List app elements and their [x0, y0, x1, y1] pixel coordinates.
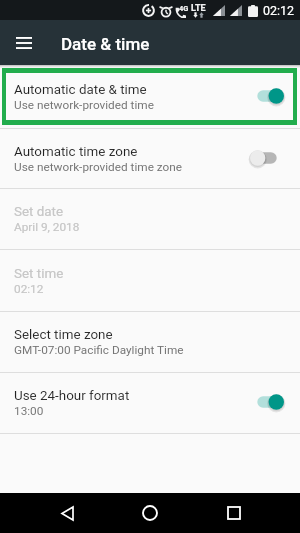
- staticText: LTE: [191, 3, 206, 14]
- staticText: Date & time: [61, 34, 150, 54]
- staticText: 02:12: [14, 282, 44, 296]
- button[interactable]: Automatic date & time: [6, 73, 293, 120]
- button[interactable]: Set date: [0, 189, 300, 249]
- button[interactable]: Toggle off: [250, 148, 284, 168]
- button[interactable]: Recent apps: [210, 493, 258, 533]
- button[interactable]: Automatic time zone: [0, 129, 300, 188]
- staticText: Automatic date & time: [14, 82, 147, 98]
- button[interactable]: Open navigation drawer: [0, 20, 45, 65]
- staticText: April 9, 2018: [14, 220, 80, 234]
- staticText: Select time zone: [14, 327, 113, 343]
- staticText: Automatic time zone: [14, 144, 138, 160]
- button[interactable]: Home: [126, 493, 174, 533]
- button[interactable]: Use 24-hour format: [0, 373, 300, 433]
- staticText: Use network-provided time zone: [14, 160, 183, 174]
- staticText: Set date: [14, 204, 64, 220]
- staticText: Set time: [14, 266, 64, 282]
- staticText: 4G: [179, 4, 189, 13]
- button[interactable]: Select time zone: [0, 312, 300, 372]
- button[interactable]: Toggle on: [250, 392, 284, 412]
- button[interactable]: Toggle on: [250, 86, 284, 106]
- staticText: GMT-07:00 Pacific Daylight Time: [14, 343, 184, 357]
- staticText: Use 24-hour format: [14, 388, 130, 404]
- staticText: 13:00: [14, 404, 44, 418]
- button[interactable]: Set time: [0, 250, 300, 311]
- staticText: Use network-provided time: [14, 98, 154, 112]
- staticText: 02:12: [263, 3, 295, 18]
- button[interactable]: Back: [43, 493, 91, 533]
